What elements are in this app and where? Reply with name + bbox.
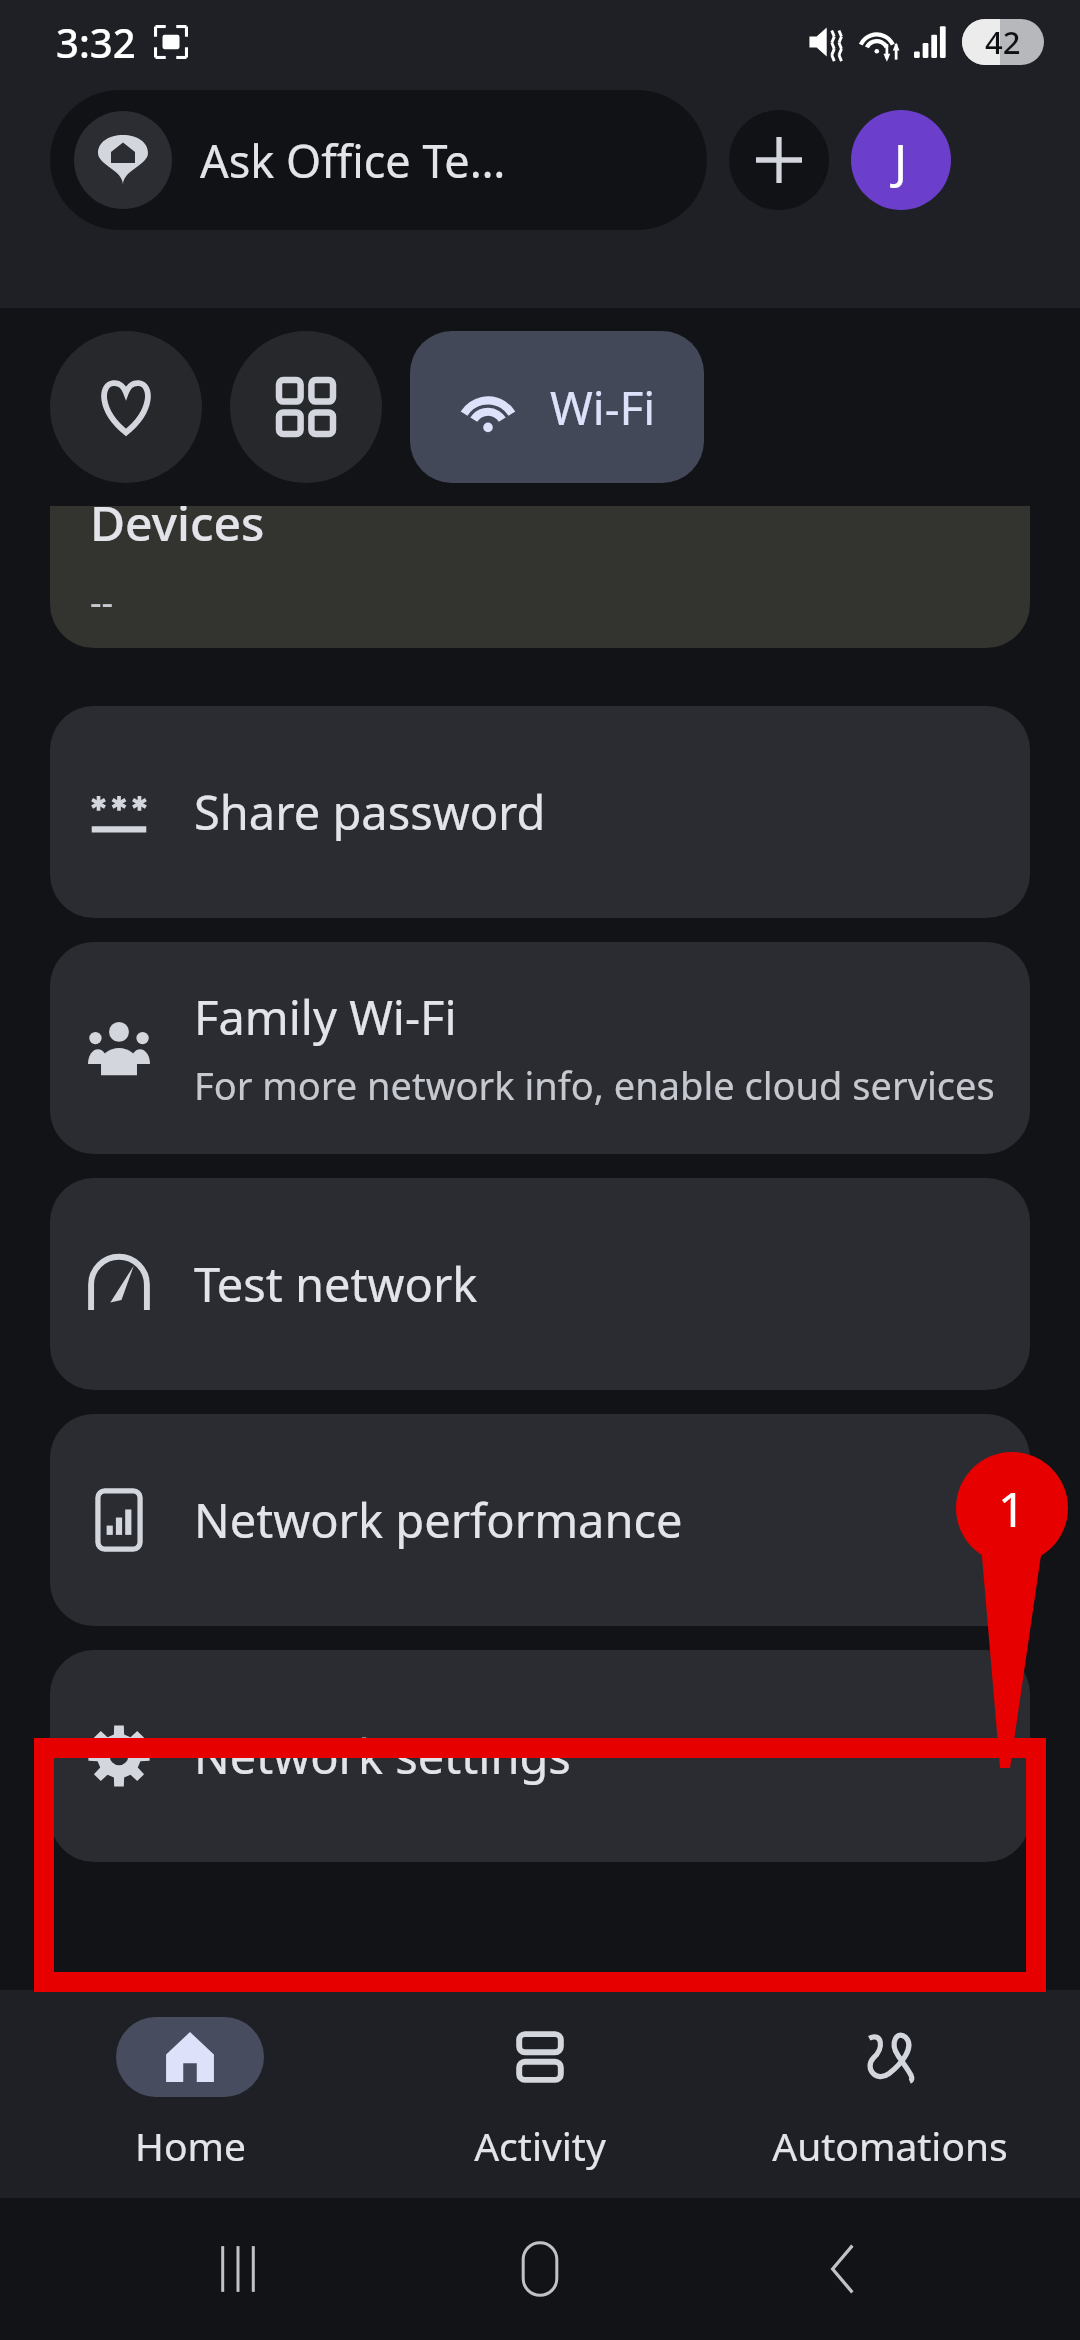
- staticText: 42: [985, 21, 1021, 63]
- button[interactable]: Recents: [173, 2204, 303, 2334]
- staticText: Automations: [772, 2119, 1008, 2172]
- button[interactable]: Add: [729, 110, 829, 210]
- button[interactable]: Test network: [50, 1178, 1030, 1390]
- button[interactable]: Wi-Fi: [410, 331, 704, 483]
- staticText: Wi-Fi: [550, 376, 656, 439]
- staticText: Ask Office Te…: [200, 130, 506, 191]
- staticText: For more network info, enable cloud serv…: [194, 1059, 995, 1111]
- staticText: Home: [135, 2119, 246, 2172]
- button[interactable]: Home: [30, 2017, 350, 2172]
- staticText: Share password: [194, 780, 546, 844]
- button[interactable]: Account: [851, 110, 951, 210]
- staticText: J: [894, 128, 908, 193]
- staticText: Devices: [90, 506, 265, 555]
- staticText: Network performance: [194, 1488, 683, 1552]
- button[interactable]: Share password: [50, 706, 1030, 918]
- staticText: Test network: [194, 1252, 478, 1316]
- button[interactable]: Favorites: [50, 331, 202, 483]
- staticText: Network settings: [194, 1724, 571, 1788]
- button[interactable]: Network settings: [50, 1650, 1030, 1862]
- button[interactable]: Ask Office Te…: [50, 90, 707, 230]
- staticText: Activity: [474, 2119, 606, 2172]
- button[interactable]: Activity: [380, 2017, 700, 2172]
- staticText: 3:32: [56, 15, 136, 69]
- staticText: Family Wi-Fi: [194, 985, 457, 1049]
- button[interactable]: Family Wi-Fi: [50, 942, 1030, 1154]
- button[interactable]: Network performance: [50, 1414, 1030, 1626]
- button[interactable]: Devices: [230, 331, 382, 483]
- staticText: --: [90, 577, 114, 626]
- button[interactable]: Back: [778, 2204, 908, 2334]
- button[interactable]: Home: [475, 2204, 605, 2334]
- staticText: 1: [998, 1476, 1026, 1541]
- button[interactable]: Devices: [50, 506, 1030, 648]
- button[interactable]: Automations: [730, 2017, 1050, 2172]
